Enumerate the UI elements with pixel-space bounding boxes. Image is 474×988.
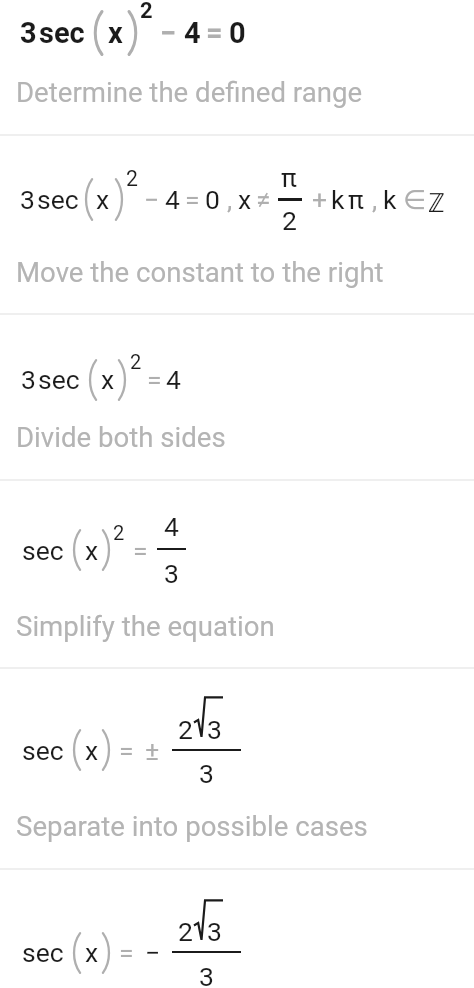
staticText: sec bbox=[38, 364, 80, 395]
staticText: 2 bbox=[113, 521, 125, 545]
staticText: 0 bbox=[205, 184, 220, 215]
staticText: 3 bbox=[20, 184, 35, 215]
staticText: sec bbox=[22, 735, 64, 766]
staticText: = bbox=[119, 735, 134, 766]
staticText: ≠ bbox=[256, 184, 271, 215]
staticText: = bbox=[206, 16, 223, 50]
staticText: 3 bbox=[199, 961, 214, 988]
staticText: 3 bbox=[20, 16, 37, 50]
staticText: 3 bbox=[164, 558, 179, 589]
staticText: 4 bbox=[166, 364, 181, 395]
staticText: x bbox=[85, 937, 99, 968]
staticText: , bbox=[372, 184, 378, 215]
staticText: − bbox=[160, 16, 177, 50]
staticText: Move the constant to the right bbox=[16, 256, 384, 288]
staticText: 4 bbox=[164, 511, 179, 542]
staticText: x bbox=[108, 16, 123, 50]
staticText: + bbox=[312, 184, 328, 215]
staticText: x bbox=[238, 184, 252, 215]
staticText: = bbox=[133, 535, 148, 566]
staticText: x bbox=[101, 364, 115, 395]
staticText: 3 bbox=[207, 916, 222, 947]
staticText: = bbox=[185, 184, 200, 215]
staticText: π bbox=[281, 162, 297, 193]
staticText: 2 bbox=[178, 714, 193, 745]
staticText: k bbox=[383, 184, 397, 215]
staticText: 2 bbox=[126, 166, 138, 191]
staticText: ℤ bbox=[428, 184, 445, 220]
staticText: 3 bbox=[21, 364, 36, 395]
staticText: sec bbox=[37, 184, 79, 215]
staticText: − bbox=[145, 937, 161, 968]
staticText: 2 bbox=[140, 0, 153, 24]
staticText: 4 bbox=[184, 16, 201, 50]
staticText: sec bbox=[22, 937, 64, 968]
staticText: 2 bbox=[178, 916, 193, 947]
staticText: x bbox=[85, 735, 99, 766]
staticText: k bbox=[331, 184, 345, 215]
staticText: 2 bbox=[130, 350, 142, 374]
staticText: 3 bbox=[199, 758, 214, 789]
staticText: Determine the defined range bbox=[16, 76, 363, 108]
staticText: Divide both sides bbox=[16, 421, 226, 453]
staticText: Separate into possible cases bbox=[16, 810, 368, 842]
staticText: x bbox=[85, 535, 99, 566]
staticText: sec bbox=[22, 535, 64, 566]
staticText: π bbox=[348, 184, 364, 215]
staticText: = bbox=[119, 937, 134, 968]
staticText: 2 bbox=[282, 205, 297, 236]
staticText: x bbox=[96, 184, 110, 215]
staticText: 3 bbox=[207, 714, 222, 745]
staticText: − bbox=[144, 184, 160, 215]
staticText: = bbox=[147, 364, 162, 395]
staticText: 0 bbox=[229, 16, 246, 50]
staticText: ± bbox=[145, 735, 160, 766]
staticText: , bbox=[227, 184, 233, 215]
staticText: Simplify the equation bbox=[16, 610, 275, 642]
staticText: ∈ bbox=[403, 184, 427, 215]
staticText: sec bbox=[39, 16, 85, 50]
staticText: 4 bbox=[165, 184, 180, 215]
